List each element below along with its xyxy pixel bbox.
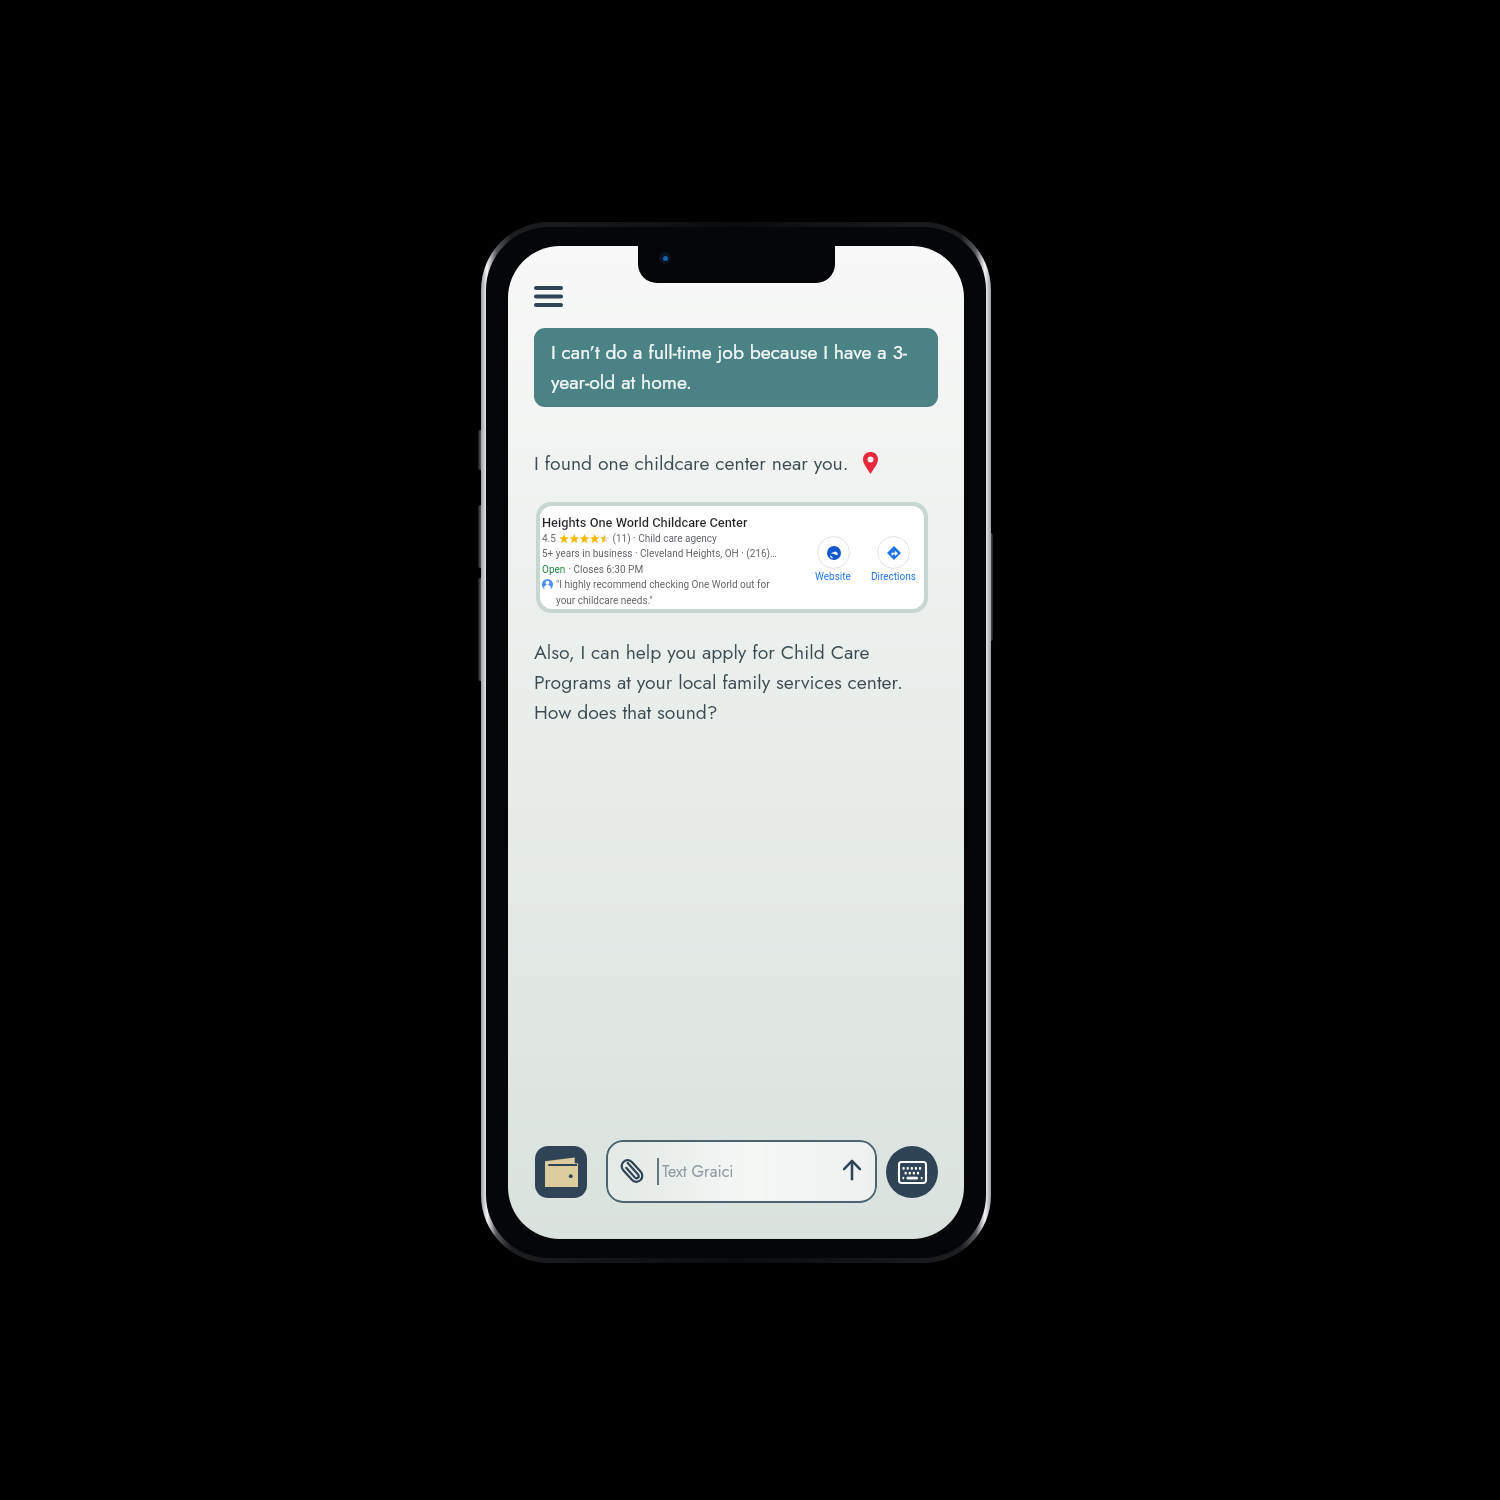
button[interactable]: Keyboard (886, 1146, 938, 1198)
button[interactable]: Send (841, 1159, 863, 1185)
staticText: Website (815, 571, 851, 583)
staticText: I can’t do a full-time job because I hav… (551, 338, 925, 396)
staticText: Also, I can help you apply for Child Car… (534, 638, 932, 726)
staticText: 5+ years in business · Cleveland Heights… (542, 548, 777, 560)
staticText: (11) · Child care agency (610, 533, 717, 545)
staticText: your childcare needs." (556, 595, 653, 607)
staticText: Open (542, 564, 566, 576)
staticText: · Closes 6:30 PM (566, 564, 644, 576)
button[interactable]: Directions (865, 536, 921, 569)
button[interactable]: Menu (525, 276, 572, 316)
button[interactable]: I can’t do a full-time job because I hav… (534, 328, 938, 407)
button[interactable]: Text Graici (606, 1140, 877, 1203)
staticText: 4.5 (542, 533, 559, 545)
staticText: Text Graici (662, 1160, 734, 1183)
button[interactable]: Heights One World Childcare Center (540, 506, 924, 609)
button[interactable]: Website (805, 536, 861, 569)
staticText: I found one childcare center near you. (534, 449, 849, 477)
staticText: Directions (871, 571, 916, 583)
staticText: "I highly recommend checking One World o… (556, 579, 770, 591)
staticText: Heights One World Childcare Center (542, 515, 748, 530)
button[interactable]: Wallet (535, 1146, 587, 1198)
